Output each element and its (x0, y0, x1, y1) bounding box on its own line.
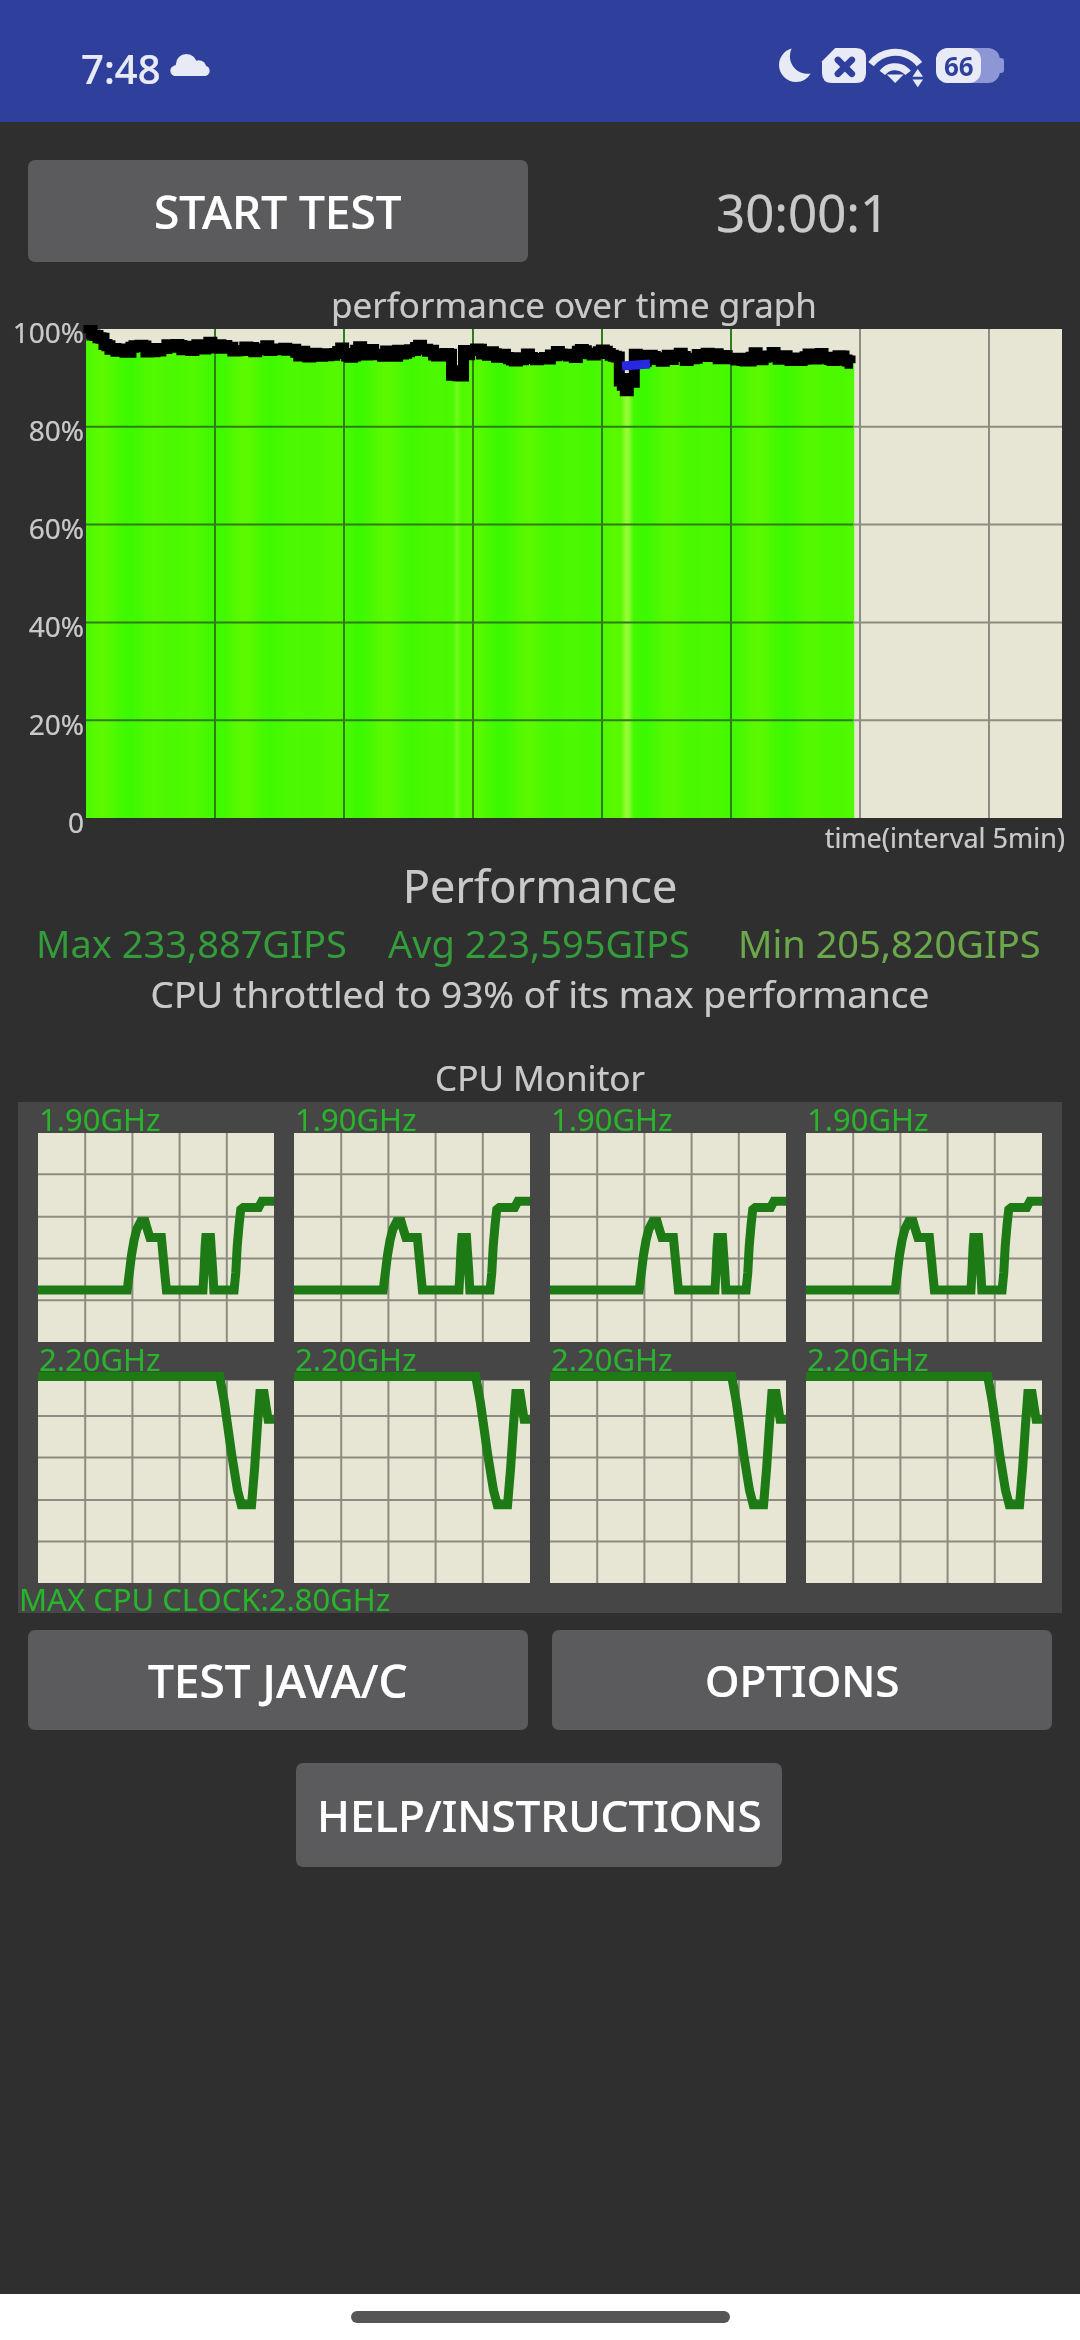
staticText: 66 (944, 48, 974, 83)
staticText: TEST JAVA/C (148, 1649, 408, 1712)
button[interactable]: OPTIONS (552, 1630, 1052, 1730)
staticText: 2.20GHz (551, 1338, 673, 1380)
staticText: 1.90GHz (807, 1098, 929, 1140)
staticText: 60% (0, 509, 84, 547)
staticText: 1.90GHz (39, 1098, 161, 1140)
staticText: 2.20GHz (807, 1338, 929, 1380)
button[interactable]: TEST JAVA/C (28, 1630, 528, 1730)
staticText: Performance (0, 855, 1080, 916)
button[interactable]: HELP/INSTRUCTIONS (296, 1763, 782, 1867)
staticText: START TEST (154, 180, 402, 243)
staticText: HELP/INSTRUCTIONS (317, 1785, 762, 1845)
staticText: Avg 223,595GIPS (388, 917, 690, 969)
staticText: 0 (0, 803, 84, 841)
staticText: time(interval 5min) (0, 819, 1065, 856)
staticText: 80% (0, 411, 84, 449)
staticText: Max 233,887GIPS (36, 917, 347, 969)
staticText: OPTIONS (705, 1650, 900, 1710)
staticText: Min 205,820GIPS (738, 917, 1041, 969)
button[interactable]: START TEST (28, 160, 528, 262)
staticText: 20% (0, 705, 84, 743)
staticText: 7:48 (81, 41, 161, 95)
staticText: CPU Monitor (0, 1054, 1080, 1102)
staticText: 2.20GHz (39, 1338, 161, 1380)
staticText: 1.90GHz (551, 1098, 673, 1140)
staticText: 40% (0, 607, 84, 645)
staticText: 2.20GHz (295, 1338, 417, 1380)
staticText: CPU throttled to 93% of its max performa… (0, 968, 1080, 1018)
staticText: MAX CPU CLOCK:2.80GHz (19, 1578, 391, 1620)
staticText: 100% (0, 313, 84, 351)
other: Home (351, 2311, 730, 2323)
staticText: performance over time graph (86, 281, 1062, 329)
staticText: 30:00:1 (716, 177, 890, 246)
staticText: 1.90GHz (295, 1098, 417, 1140)
